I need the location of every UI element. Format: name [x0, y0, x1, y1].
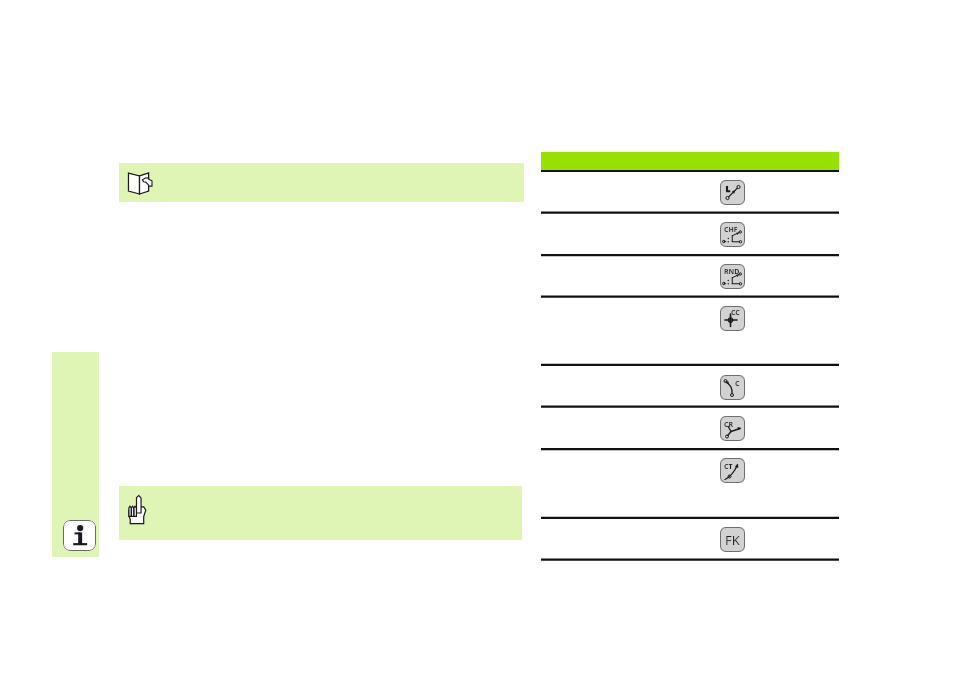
staticText: CC: [731, 308, 740, 318]
button[interactable]: Circular path CR key: [720, 416, 745, 441]
button[interactable]: Attention note: [119, 486, 522, 540]
button[interactable]: Circle centre CC key: [720, 306, 745, 331]
staticText: FK: [725, 531, 740, 549]
button[interactable]: Chamfer CHF key: [720, 222, 745, 247]
button[interactable]: Circular path C key: [720, 375, 745, 400]
button[interactable]: Free contour FK key: [720, 527, 745, 552]
button[interactable]: Information chapter tab: [52, 352, 99, 557]
staticText: C: [735, 379, 740, 389]
button[interactable]: Machine manual note: [119, 163, 524, 202]
staticText: CHF: [724, 225, 738, 235]
staticText: CT: [724, 462, 733, 472]
staticText: RND: [724, 267, 740, 277]
button[interactable]: Rounding RND key: [720, 264, 745, 289]
button[interactable]: Straight line L key: [720, 180, 745, 205]
staticText: CR: [724, 420, 734, 430]
button[interactable]: Tangential arc CT key: [720, 458, 745, 483]
